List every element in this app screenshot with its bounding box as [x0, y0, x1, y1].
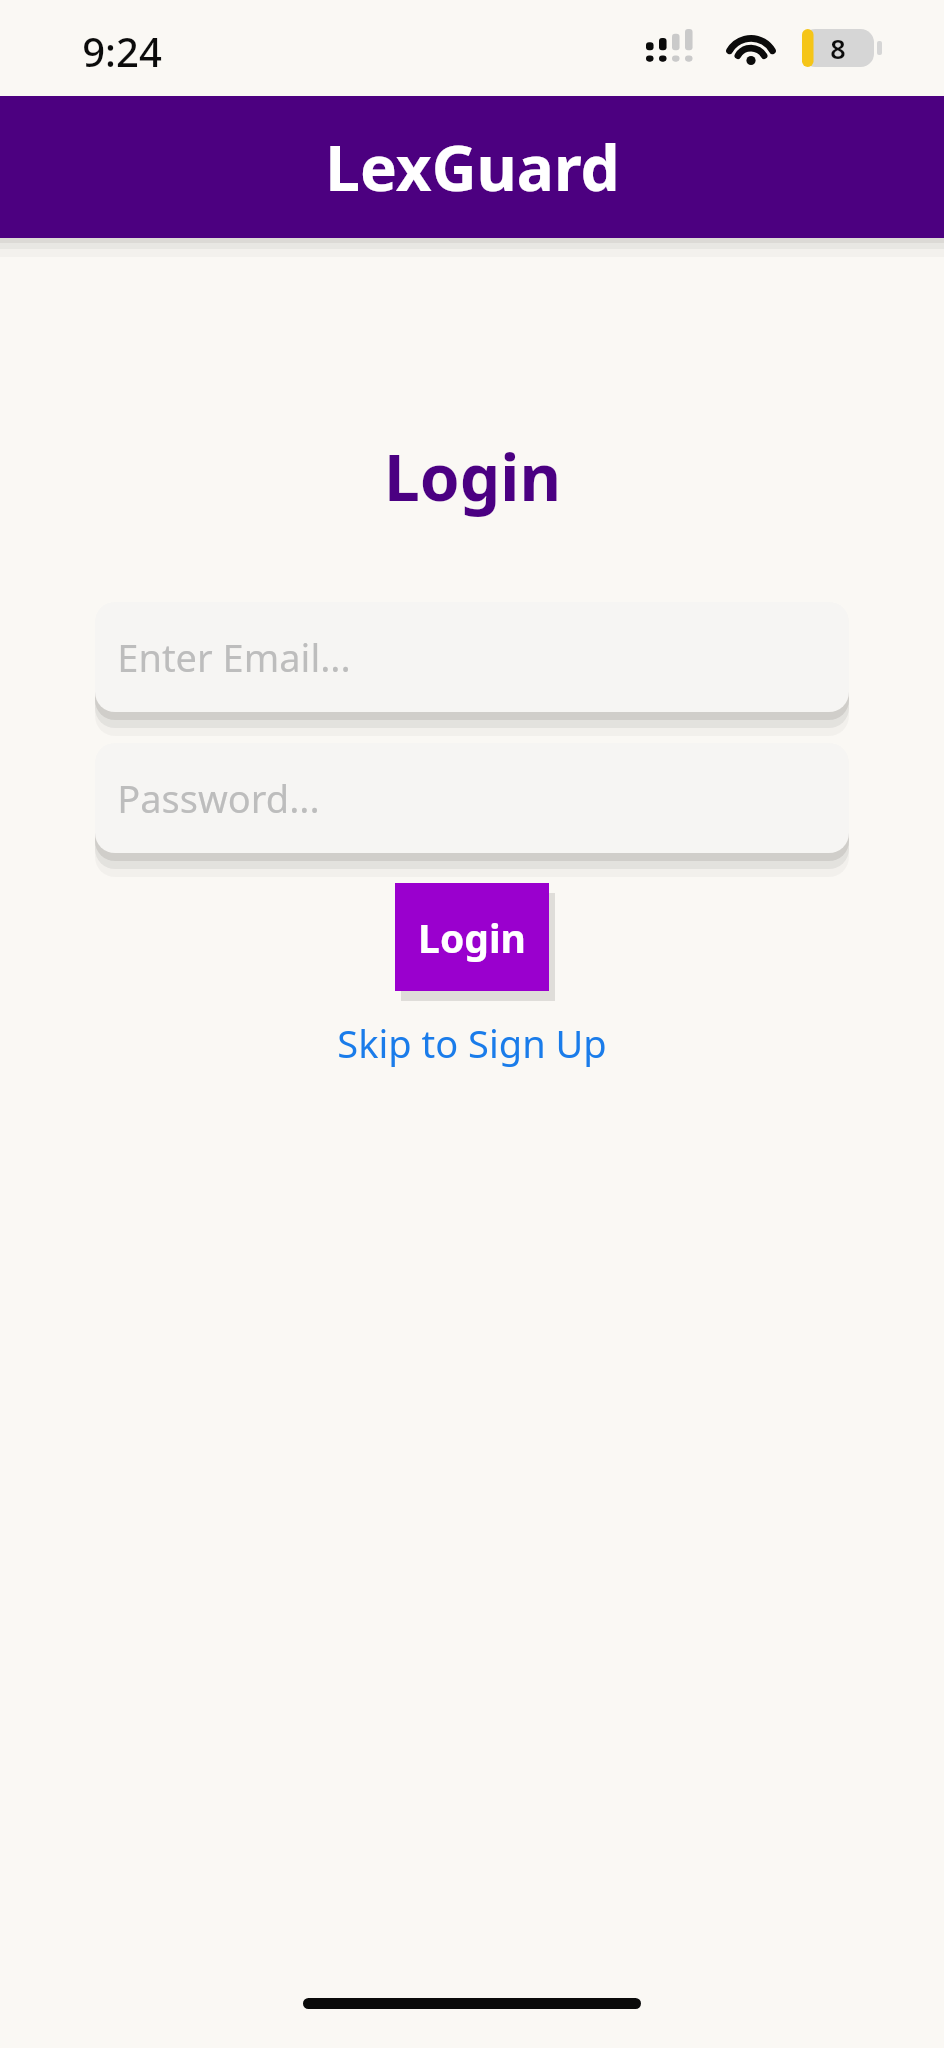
staticText: Skip to Sign Up [337, 1017, 607, 1069]
button[interactable]: Enter Email... [95, 602, 849, 712]
button[interactable]: Login [395, 883, 549, 991]
other: Battery 8 percent [802, 29, 874, 67]
other: Wi-Fi [724, 28, 778, 68]
staticText: Login [418, 911, 526, 964]
staticText: LexGuard [325, 125, 620, 209]
other: Cellular signal [646, 29, 698, 67]
staticText: 9:24 [82, 24, 162, 78]
staticText: Login [384, 433, 561, 520]
button[interactable]: Skip to Sign Up [323, 1009, 621, 1077]
button[interactable]: Password... [95, 743, 849, 853]
staticText: Enter Email... [117, 631, 351, 683]
staticText: 8 [830, 30, 846, 67]
staticText: Password... [117, 772, 320, 824]
